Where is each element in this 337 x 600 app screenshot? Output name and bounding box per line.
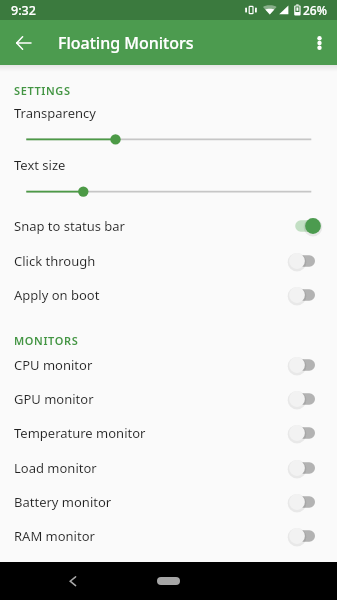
staticText: GPU monitor bbox=[14, 390, 94, 408]
button[interactable]: Home bbox=[157, 577, 180, 585]
button[interactable]: RAM monitor bbox=[0, 519, 337, 553]
button[interactable]: Battery monitor bbox=[0, 485, 337, 519]
button[interactable]: Apply on boot bbox=[0, 278, 337, 312]
button[interactable]: More options bbox=[302, 25, 337, 60]
staticText: RAM monitor bbox=[14, 527, 95, 545]
staticText: MONITORS bbox=[14, 333, 79, 348]
staticText: Click through bbox=[14, 252, 96, 270]
staticText: Load monitor bbox=[14, 459, 97, 477]
staticText: Floating Monitors bbox=[58, 32, 194, 54]
staticText: Text size bbox=[14, 156, 66, 174]
staticText: Temperature monitor bbox=[14, 424, 146, 442]
button[interactable]: Navigate up bbox=[6, 25, 41, 60]
staticText: Battery monitor bbox=[14, 493, 112, 511]
button[interactable]: Temperature monitor bbox=[0, 416, 337, 450]
button[interactable]: Click through bbox=[0, 244, 337, 278]
staticText: Snap to status bar bbox=[14, 217, 125, 235]
staticText: 26% bbox=[303, 2, 327, 18]
button[interactable]: Snap to status bar bbox=[0, 209, 337, 243]
staticText: SETTINGS bbox=[14, 83, 71, 98]
button[interactable]: Transparency bbox=[0, 104, 337, 155]
button[interactable]: CPU monitor bbox=[0, 348, 337, 382]
staticText: CPU monitor bbox=[14, 356, 93, 374]
button[interactable]: Text size bbox=[0, 156, 337, 208]
staticText: 9:32 bbox=[11, 2, 36, 19]
staticText: Transparency bbox=[14, 104, 96, 122]
staticText: Apply on boot bbox=[14, 286, 100, 304]
button[interactable]: Load monitor bbox=[0, 451, 337, 485]
button[interactable]: GPU monitor bbox=[0, 382, 337, 416]
button[interactable]: Back bbox=[60, 568, 86, 594]
